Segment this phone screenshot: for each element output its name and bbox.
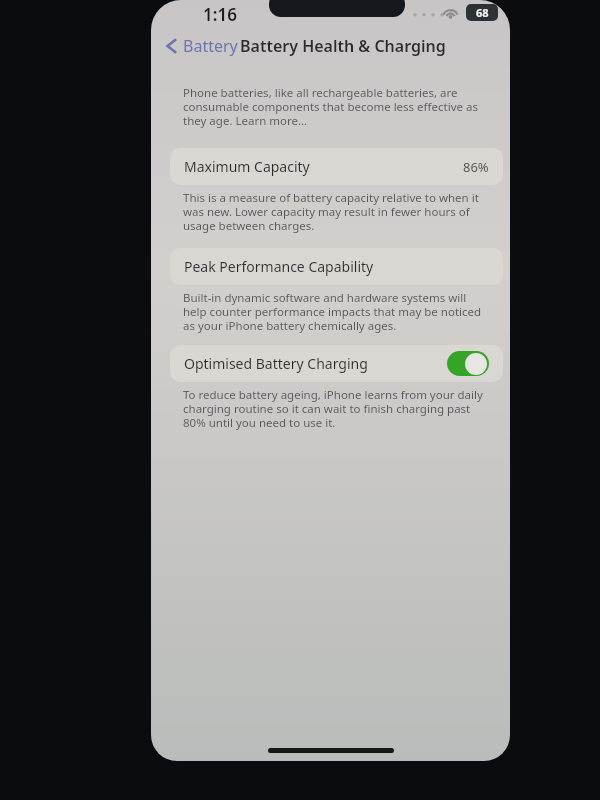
staticText: Maximum Capacity: [184, 157, 310, 176]
staticText: Built-in dynamic software and hardware s…: [183, 290, 491, 333]
button[interactable]: Battery: [165, 35, 238, 57]
staticText: To reduce battery ageing, iPhone learns …: [183, 387, 491, 430]
button[interactable]: Optimised Battery Charging toggle: [447, 351, 489, 376]
staticText: 1:16: [203, 3, 237, 26]
staticText: 68: [476, 5, 489, 20]
button[interactable]: Peak Performance Capability: [170, 248, 503, 285]
button[interactable]: Maximum Capacity: [170, 148, 503, 185]
button[interactable]: Optimised Battery Charging: [170, 345, 503, 382]
staticText: Phone batteries, like all rechargeable b…: [183, 85, 483, 128]
staticText: This is a measure of battery capacity re…: [183, 190, 493, 233]
staticText: Battery: [183, 35, 238, 57]
staticText: Optimised Battery Charging: [184, 354, 368, 373]
staticText: 86%: [463, 158, 489, 176]
staticText: Peak Performance Capability: [184, 257, 374, 276]
staticText: Battery Health & Charging: [240, 35, 446, 57]
